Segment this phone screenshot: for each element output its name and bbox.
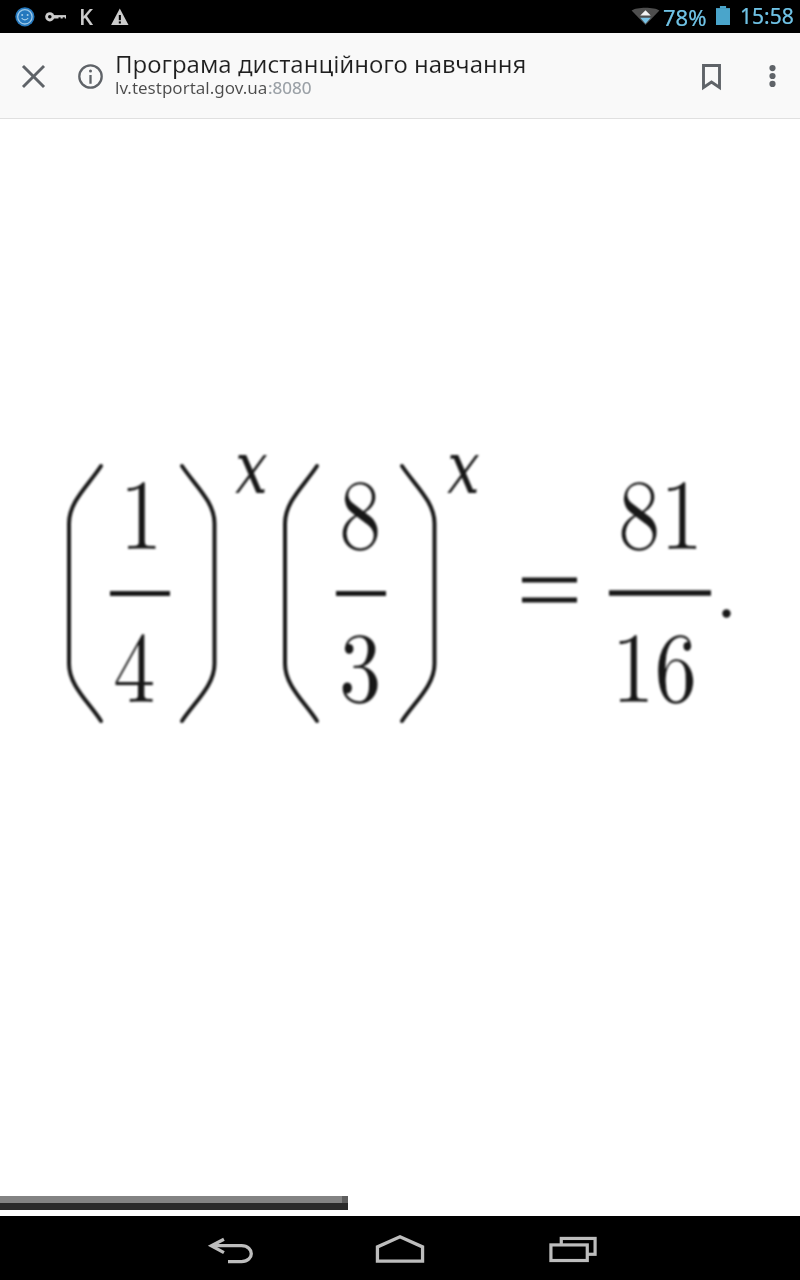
- button[interactable]: Site information: [62, 33, 118, 119]
- staticText: :8080: [268, 76, 312, 99]
- button[interactable]: Home: [352, 1217, 448, 1280]
- staticText: x: [447, 425, 481, 510]
- staticText: Програма дистанційного навчання: [115, 47, 527, 80]
- button[interactable]: Back: [184, 1219, 280, 1280]
- button[interactable]: Recent apps: [525, 1217, 621, 1280]
- staticText: 1: [120, 435, 163, 578]
- staticText: 3: [339, 588, 382, 731]
- staticText: 81: [618, 435, 704, 578]
- button[interactable]: More options: [745, 33, 800, 119]
- button[interactable]: Bookmark: [678, 33, 745, 119]
- button[interactable]: Close: [0, 33, 66, 119]
- staticText: 8: [339, 435, 382, 578]
- staticText: 4: [113, 588, 156, 731]
- staticText: 16: [612, 588, 698, 731]
- staticText: lv.testportal.gov.ua: [115, 76, 268, 99]
- staticText: K: [79, 1, 93, 31]
- staticText: 15:58: [740, 2, 794, 31]
- staticText: x: [235, 425, 269, 510]
- staticText: 78%: [663, 2, 707, 32]
